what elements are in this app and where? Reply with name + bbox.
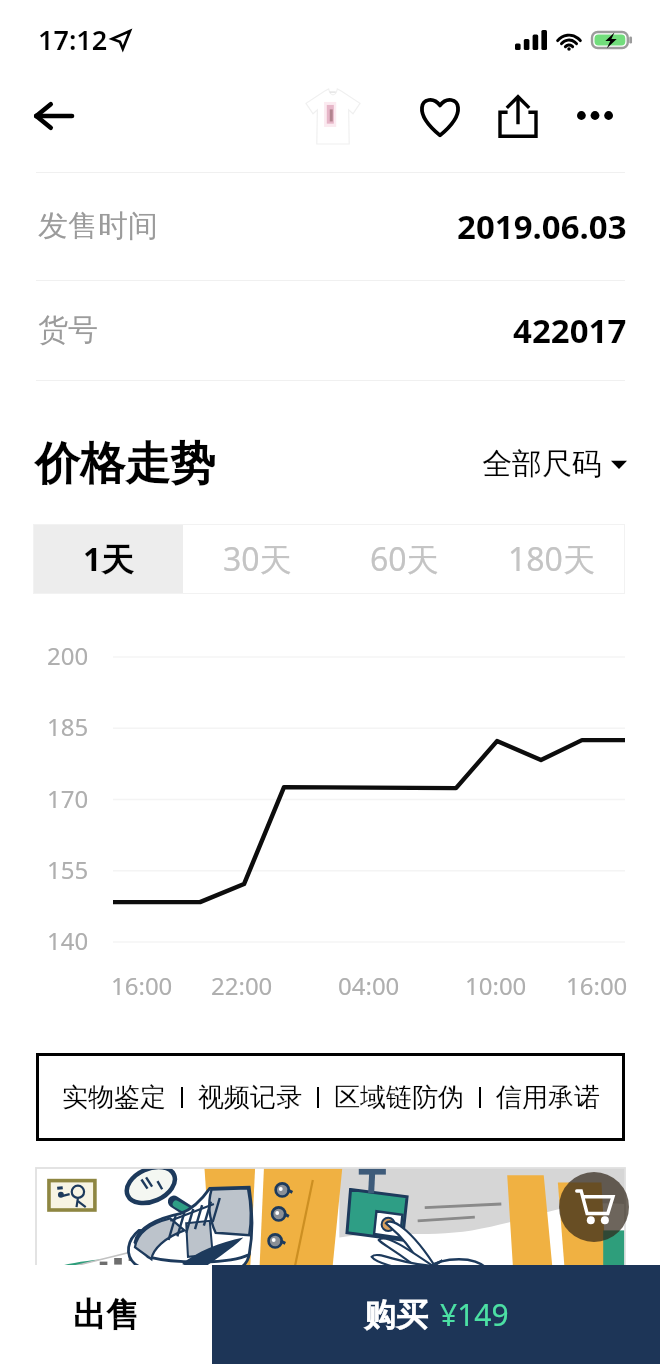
button[interactable]: 发售时间 [0, 172, 660, 280]
button[interactable]: Promotion banner [36, 1168, 625, 1288]
button[interactable]: More options [563, 84, 627, 148]
staticText: 全部尺码 [482, 445, 602, 483]
staticText: 区域链防伪 [334, 1081, 464, 1114]
staticText: 180天 [508, 537, 595, 581]
staticText: ¥149 [440, 1294, 509, 1335]
staticText: 22:00 [211, 969, 273, 1002]
button[interactable]: 出售 [0, 1265, 212, 1364]
button[interactable]: 货号 [0, 280, 660, 380]
staticText: 200 [47, 639, 89, 672]
staticText: 1天 [83, 537, 134, 581]
button[interactable]: 30天 [183, 524, 331, 594]
staticText: 30天 [223, 537, 292, 581]
staticText: 实物鉴定 [62, 1081, 166, 1114]
staticText: 60天 [370, 537, 439, 581]
staticText: 422017 [513, 308, 627, 353]
staticText: 16:00 [111, 969, 173, 1002]
button[interactable]: 1天 [33, 524, 183, 594]
staticText: 140 [47, 924, 89, 957]
button[interactable]: Back [18, 84, 88, 154]
staticText: 价格走势 [35, 436, 215, 493]
staticText: 185 [47, 710, 89, 743]
button[interactable]: 60天 [331, 524, 478, 594]
button[interactable]: Share [486, 84, 550, 148]
staticText: 货号 [38, 311, 98, 349]
button[interactable]: 购买 [212, 1265, 660, 1364]
staticText: 04:00 [338, 969, 400, 1002]
staticText: 170 [47, 782, 89, 815]
staticText: 155 [47, 853, 89, 886]
staticText: 出售 [73, 1294, 139, 1336]
staticText: 10:00 [465, 969, 527, 1002]
staticText: 2019.06.03 [457, 204, 627, 249]
staticText: 购买 [364, 1295, 428, 1335]
staticText: 信用承诺 [496, 1081, 600, 1114]
staticText: 视频记录 [198, 1081, 302, 1114]
button[interactable]: 全部尺码 [482, 445, 627, 483]
button[interactable]: 180天 [478, 524, 625, 594]
staticText: 16:00 [566, 969, 628, 1002]
staticText: 发售时间 [38, 207, 158, 245]
button[interactable]: Favorite [408, 84, 472, 148]
button[interactable]: 实物鉴定 [36, 1053, 625, 1141]
staticText: 17:12 [38, 21, 108, 58]
button[interactable]: Shopping cart [559, 1172, 629, 1242]
